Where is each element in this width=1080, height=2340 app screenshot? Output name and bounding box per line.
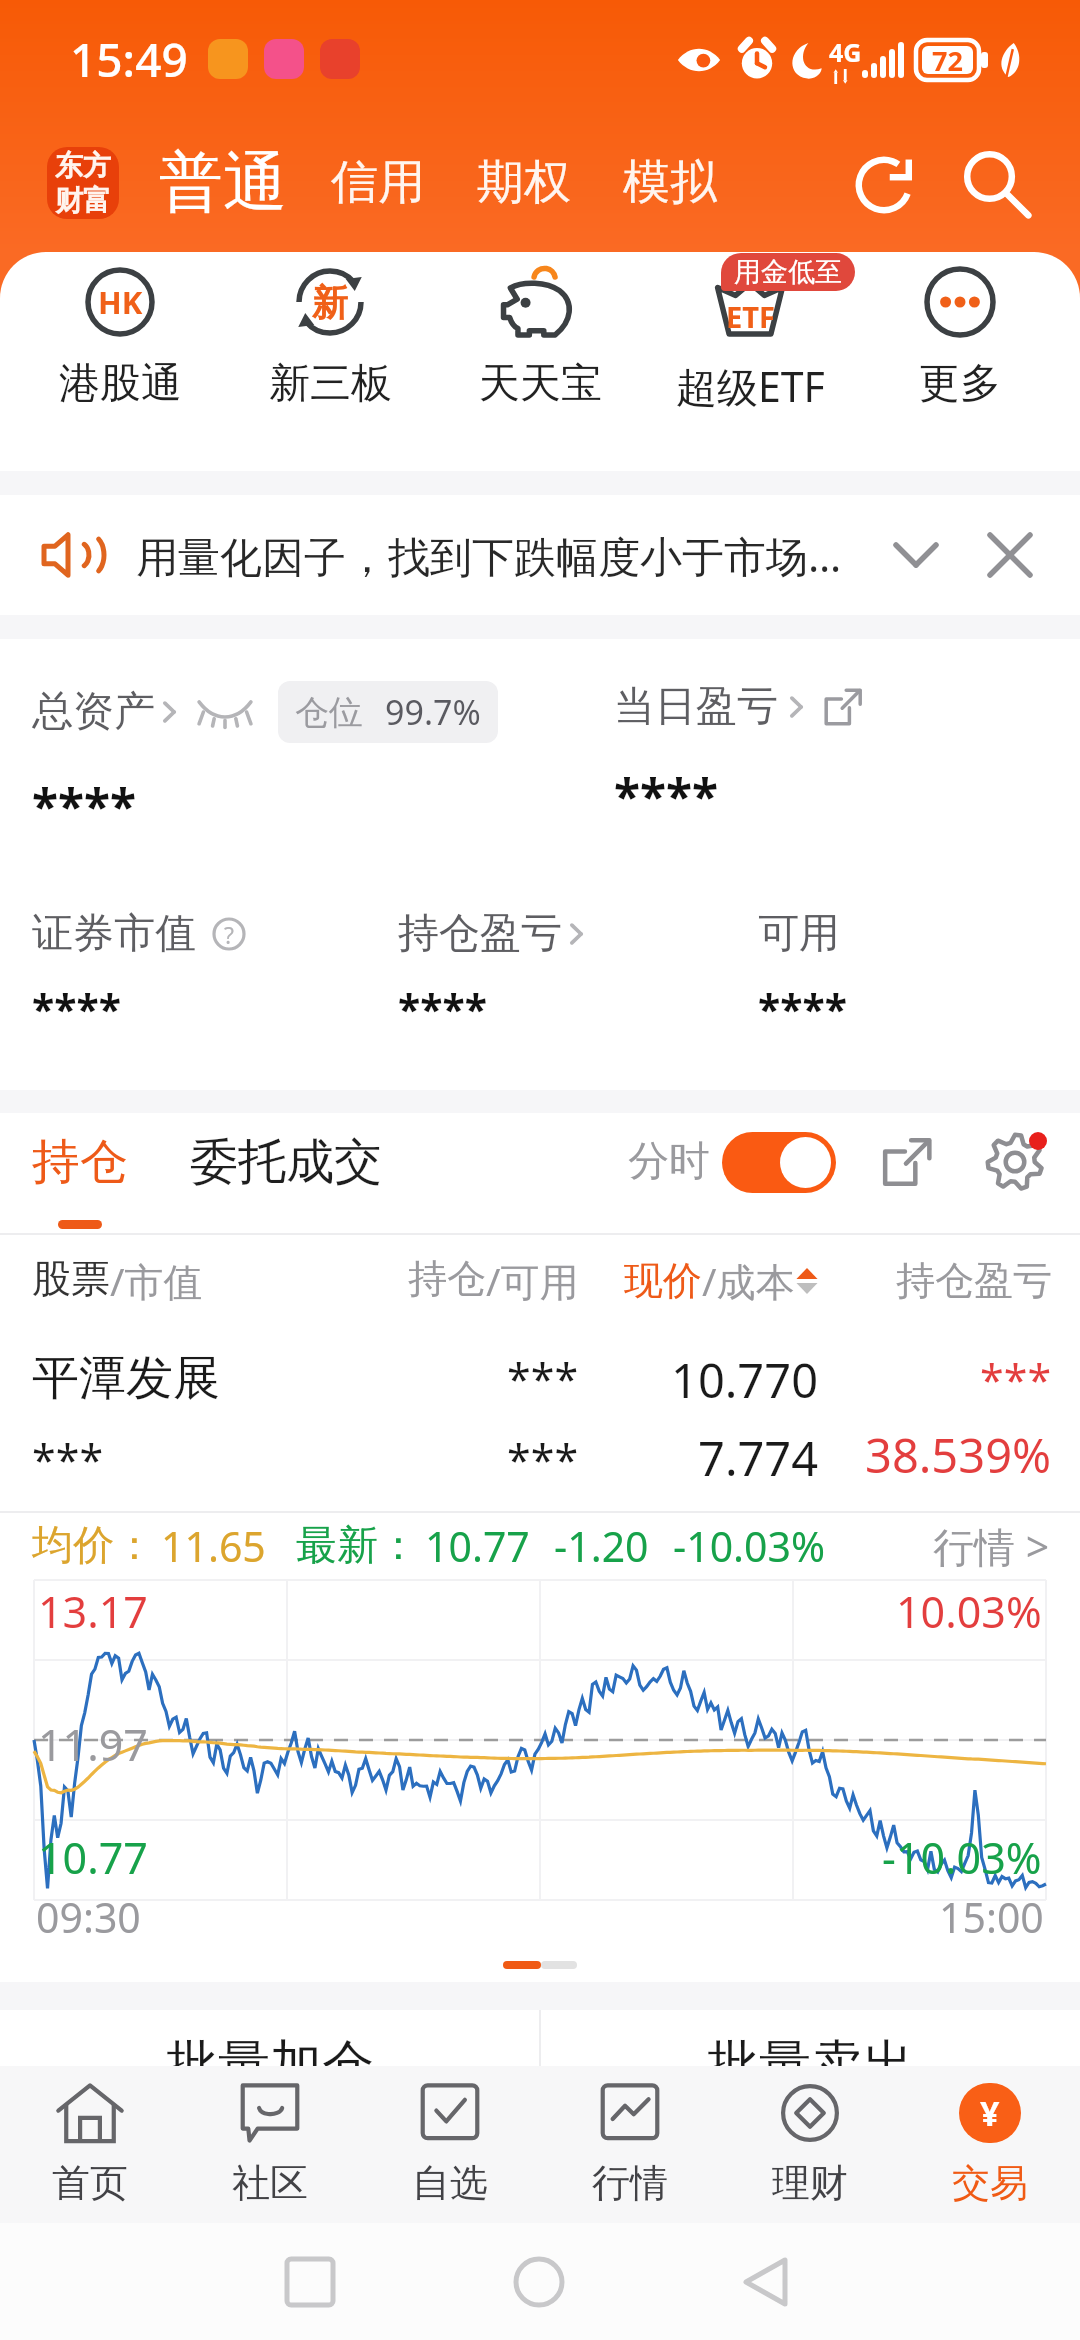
button[interactable]: 持仓 <box>32 1132 128 1229</box>
button[interactable]: Open external <box>872 1127 942 1197</box>
staticText: 11.65 <box>161 1518 266 1574</box>
staticText: 持仓 <box>32 1132 128 1192</box>
staticText: 港股通 <box>59 358 182 410</box>
button[interactable]: Settings <box>978 1125 1052 1199</box>
staticText: 10.03% <box>896 1582 1042 1641</box>
button[interactable]: 天天宝 <box>435 252 645 471</box>
staticText: 72 <box>932 42 963 79</box>
staticText: 新三板 <box>269 358 392 410</box>
button[interactable]: Toggle chart <box>722 1132 836 1193</box>
staticText: 15:49 <box>70 28 188 91</box>
staticText: /可用 <box>486 1254 579 1307</box>
button[interactable]: 模拟 <box>623 153 717 212</box>
staticText: 更多 <box>919 358 1001 410</box>
button[interactable]: Back <box>729 2244 805 2320</box>
button[interactable]: 理财 <box>720 2066 900 2223</box>
staticText: /成本 <box>702 1254 795 1307</box>
button[interactable]: 行情 <box>540 2066 720 2223</box>
staticText: 现价 <box>624 1256 702 1305</box>
staticText: 4G <box>829 35 862 69</box>
button[interactable]: ¥ <box>900 2066 1080 2223</box>
staticText: 超级ETF <box>676 358 825 414</box>
button[interactable]: Search <box>948 135 1044 231</box>
staticText: 仓位 <box>295 691 363 734</box>
button[interactable]: 自选 <box>360 2066 540 2223</box>
staticText: 交易 <box>952 2159 1028 2207</box>
button[interactable]: HK <box>15 252 225 471</box>
staticText: 10.77 <box>38 1828 148 1887</box>
staticText: **** <box>32 980 121 1036</box>
button[interactable]: 更多 <box>855 252 1065 471</box>
staticText: 首页 <box>52 2159 128 2207</box>
staticText: 天天宝 <box>479 358 602 410</box>
staticText: 财富 <box>55 183 111 218</box>
staticText: 38.539% <box>865 1423 1052 1487</box>
button[interactable]: 社区 <box>180 2066 360 2223</box>
staticText: 当日盈亏 <box>614 681 778 733</box>
staticText: *** <box>980 1350 1052 1409</box>
staticText: **** <box>758 980 847 1036</box>
staticText: 最新： <box>296 1520 419 1572</box>
staticText: -1.20 <box>554 1518 649 1574</box>
button[interactable]: 普通 <box>159 142 287 223</box>
staticText: 持仓盈亏 <box>896 1256 1052 1305</box>
staticText: 持仓 <box>408 1254 486 1303</box>
staticText: ¥ <box>980 2090 1000 2136</box>
button[interactable]: 首页 <box>0 2066 180 2223</box>
staticText: 理财 <box>772 2159 848 2207</box>
button[interactable]: 仓位 <box>278 681 498 743</box>
button[interactable]: Recents <box>272 2244 348 2320</box>
staticText: HK <box>98 281 143 323</box>
staticText: 用量化因子，找到下跌幅度小于市场… <box>136 527 842 584</box>
staticText: 自选 <box>412 2159 488 2207</box>
staticText: /市值 <box>110 1254 203 1307</box>
staticText: 证券市值 <box>32 908 196 960</box>
button[interactable]: 期权 <box>477 153 571 212</box>
staticText: ? <box>224 919 234 950</box>
staticText: 东方 <box>55 148 111 183</box>
button[interactable]: Refresh <box>838 135 934 231</box>
staticText: 总资产 <box>32 686 155 738</box>
button[interactable]: Close <box>970 515 1050 595</box>
staticText: 批量卖出 <box>707 2032 915 2066</box>
button[interactable]: 委托成交 <box>190 1150 382 1210</box>
staticText: 持仓盈亏 <box>398 908 562 960</box>
staticText: 15:00 <box>939 1889 1044 1945</box>
staticText: **** <box>398 980 487 1036</box>
button[interactable]: 批量加仓 <box>0 2010 539 2066</box>
staticText: 新 <box>312 280 348 325</box>
staticText: 10.770 <box>671 1348 819 1412</box>
staticText: 7.774 <box>698 1426 819 1490</box>
staticText: **** <box>32 773 137 838</box>
staticText: 分时 <box>628 1136 710 1188</box>
button[interactable]: Home <box>501 2244 577 2320</box>
staticText: ETF <box>726 297 775 336</box>
staticText: 13.17 <box>38 1582 148 1641</box>
staticText: 平潭发展 <box>32 1349 220 1408</box>
button[interactable]: 新 <box>225 252 435 471</box>
staticText: 社区 <box>232 2159 308 2207</box>
staticText: 均价： <box>32 1520 155 1572</box>
staticText: 11.97 <box>38 1715 148 1774</box>
staticText: 股票 <box>32 1254 110 1303</box>
button[interactable]: 批量卖出 <box>541 2010 1080 2066</box>
staticText: -10.03% <box>673 1518 826 1574</box>
staticText: 99.7% <box>385 689 481 735</box>
staticText: 10.77 <box>425 1518 530 1574</box>
staticText: 行情 <box>592 2159 668 2207</box>
staticText: 09:30 <box>36 1889 141 1945</box>
staticText: -10.03% <box>882 1828 1042 1887</box>
staticText: *** <box>507 1349 579 1408</box>
button[interactable]: Expand <box>876 515 956 595</box>
staticText: 批量加仓 <box>166 2032 374 2066</box>
button[interactable]: ETF <box>645 252 855 471</box>
staticText: 行情 > <box>933 1518 1050 1574</box>
staticText: **** <box>614 763 719 828</box>
staticText: 可用 <box>758 908 840 960</box>
staticText: *** <box>507 1430 579 1489</box>
button[interactable]: 信用 <box>331 153 425 212</box>
button[interactable]: 平潭发展 <box>0 1326 1080 1511</box>
staticText: 用金低至 <box>734 255 842 289</box>
button[interactable]: East Money <box>47 147 119 219</box>
staticText: *** <box>32 1430 104 1489</box>
